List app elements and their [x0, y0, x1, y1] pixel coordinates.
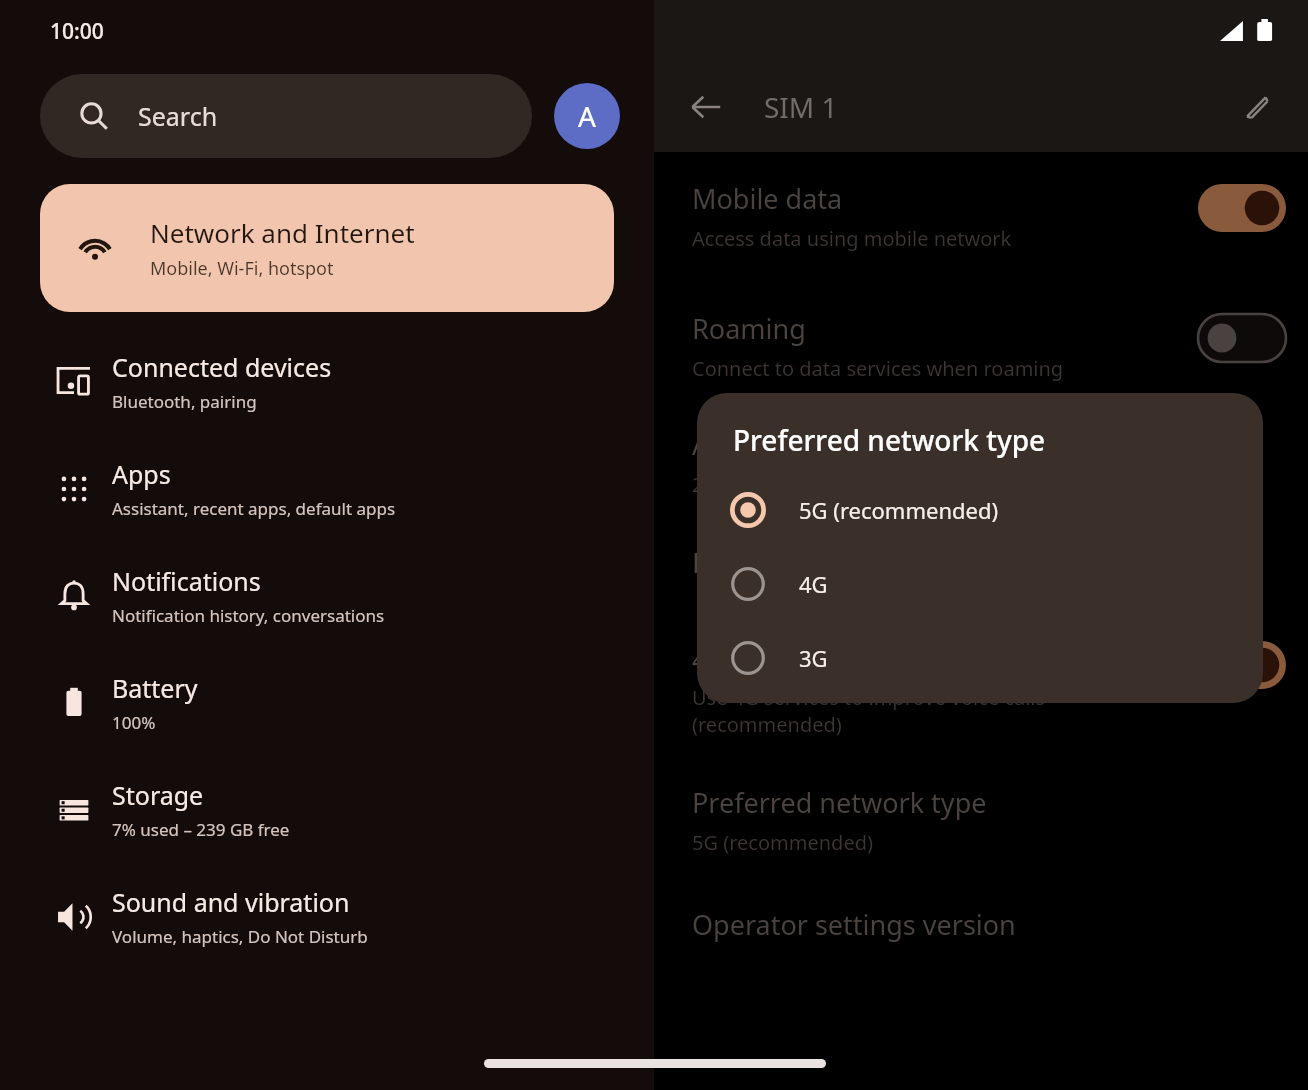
button[interactable]: Network and Internet: [40, 184, 614, 312]
staticText: Network and Internet: [150, 215, 415, 250]
staticText: Apps: [112, 457, 171, 491]
staticText: 100%: [112, 711, 156, 734]
staticText: Use 4G services to improve voice calls: [692, 684, 1046, 711]
staticText: Sound and vibration: [112, 885, 350, 919]
staticText: Roaming: [692, 310, 806, 347]
button[interactable]: Apps: [0, 435, 654, 542]
button[interactable]: Operator settings version: [692, 906, 1308, 943]
button[interactable]: 4G Calling: [654, 641, 1308, 738]
staticText: 10:00: [50, 17, 104, 46]
button[interactable]: Back: [678, 79, 734, 135]
button[interactable]: 5G (recommended): [697, 481, 1263, 539]
staticText: Storage: [112, 778, 204, 812]
button[interactable]: Edit: [1228, 79, 1284, 135]
staticText: Access data using mobile network: [692, 225, 1012, 252]
button[interactable]: Notifications: [0, 542, 654, 649]
button[interactable]: Account: [554, 83, 620, 149]
staticText: 4G: [799, 569, 828, 599]
staticText: Notifications: [112, 564, 261, 598]
staticText: Operator settings version: [692, 906, 1016, 943]
staticText: Preferred network type: [733, 421, 1046, 459]
staticText: 7% used – 239 GB free: [112, 818, 290, 841]
button[interactable]: Connected devices: [0, 328, 654, 435]
button[interactable]: Mobile data: [654, 176, 1308, 252]
button[interactable]: 4G: [697, 555, 1263, 613]
staticText: 2.61 GB used Apr 10 – May 9: [692, 471, 959, 498]
button[interactable]: Battery: [0, 649, 654, 756]
staticText: 5G (recommended): [692, 829, 873, 856]
button[interactable]: Toggle off: [1198, 314, 1286, 362]
button[interactable]: Storage: [0, 756, 654, 863]
button[interactable]: Sound and vibration: [0, 863, 654, 970]
staticText: Mobile, Wi-Fi, hotspot: [150, 256, 334, 281]
staticText: Data warning & limit: [692, 544, 953, 581]
staticText: A: [578, 97, 596, 135]
staticText: App data usage: [692, 426, 890, 463]
staticText: 3G: [799, 643, 828, 673]
button[interactable]: Search: [40, 74, 532, 158]
button[interactable]: Preferred network type: [692, 784, 1308, 856]
staticText: Mobile data: [692, 180, 843, 217]
staticText: 4G Calling: [692, 641, 821, 678]
staticText: (recommended): [692, 711, 842, 738]
staticText: SIM 1: [764, 88, 838, 126]
button[interactable]: Roaming: [654, 306, 1308, 382]
staticText: Bluetooth, pairing: [112, 390, 257, 413]
button[interactable]: Toggle on: [1198, 641, 1286, 689]
staticText: Volume, haptics, Do Not Disturb: [112, 925, 368, 948]
staticText: Search: [138, 99, 218, 133]
staticText: Notification history, conversations: [112, 604, 385, 627]
staticText: Connected devices: [112, 350, 332, 384]
staticText: 5G (recommended): [799, 495, 999, 525]
staticText: Assistant, recent apps, default apps: [112, 497, 396, 520]
staticText: Preferred network type: [692, 784, 987, 821]
button[interactable]: Toggle on: [1198, 184, 1286, 232]
staticText: Connect to data services when roaming: [692, 355, 1064, 382]
button[interactable]: 3G: [697, 629, 1263, 687]
staticText: Battery: [112, 671, 198, 705]
